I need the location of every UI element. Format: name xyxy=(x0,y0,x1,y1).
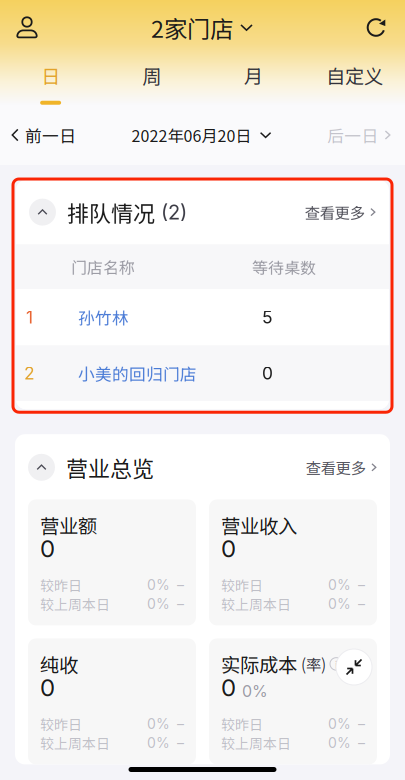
staticText: 5 xyxy=(262,307,273,328)
staticText: 实际成本 xyxy=(221,650,297,678)
button[interactable]: 自定义 xyxy=(304,50,405,110)
button[interactable]: 实际成本 xyxy=(209,638,377,764)
button[interactable]: 纯收 xyxy=(28,638,196,764)
staticText: 0% xyxy=(147,576,170,593)
staticText: 较昨日 xyxy=(40,714,82,734)
staticText: 较昨日 xyxy=(221,714,263,734)
staticText: 0% xyxy=(328,595,351,612)
button[interactable]: Refresh xyxy=(366,9,405,45)
staticText: 2 xyxy=(24,363,35,384)
staticText: 营业总览 xyxy=(66,451,154,483)
staticText: 小美的回归门店 xyxy=(78,361,197,385)
staticText: 营业收入 xyxy=(221,511,297,539)
staticText: 查看更多 xyxy=(305,201,365,223)
staticText: – xyxy=(177,715,184,732)
button[interactable]: 2 xyxy=(16,345,389,401)
button[interactable]: 营业额 xyxy=(28,499,196,625)
staticText: 2022年06月20日 xyxy=(132,123,252,147)
staticText: 0% xyxy=(147,595,170,612)
staticText: – xyxy=(177,734,184,751)
button[interactable]: 2022年06月20日 xyxy=(116,116,288,154)
staticText: 门店名称 xyxy=(71,255,135,278)
button[interactable]: Collapse section xyxy=(29,199,56,226)
staticText: 前一日 xyxy=(25,123,76,147)
staticText: 0 xyxy=(262,363,273,384)
button[interactable]: Collapse all xyxy=(336,649,372,685)
staticText: 月 xyxy=(244,61,263,89)
staticText: 较上周本日 xyxy=(221,594,291,614)
staticText: 0% xyxy=(242,682,268,701)
staticText: 0 xyxy=(221,673,236,702)
staticText: 2家门店 xyxy=(151,11,233,44)
staticText: – xyxy=(177,595,184,612)
staticText: – xyxy=(358,715,365,732)
staticText: 查看更多 xyxy=(306,456,366,478)
staticText: 0% xyxy=(147,715,170,732)
staticText: 较上周本日 xyxy=(221,733,291,753)
button[interactable]: 营业收入 xyxy=(209,499,377,625)
staticText: 0% xyxy=(147,734,170,751)
button[interactable]: 1 xyxy=(16,289,389,345)
staticText: 后一日 xyxy=(327,123,378,147)
staticText: 0% xyxy=(328,715,351,732)
staticText: 0 xyxy=(40,534,55,563)
staticText: 较上周本日 xyxy=(40,733,110,753)
staticText: 0 xyxy=(221,534,236,563)
staticText: 0 xyxy=(40,673,55,702)
staticText: 等待桌数 xyxy=(252,255,316,278)
button[interactable]: 周 xyxy=(101,50,202,110)
staticText: 日 xyxy=(41,61,60,89)
staticText: 自定义 xyxy=(326,61,383,89)
button[interactable]: 后一日 xyxy=(327,115,405,155)
button[interactable]: Profile xyxy=(0,8,38,47)
staticText: 较昨日 xyxy=(40,575,82,595)
staticText: 纯收 xyxy=(40,650,78,678)
button[interactable]: 月 xyxy=(202,50,304,110)
staticText: 排队情况 xyxy=(67,196,155,228)
staticText: 0% xyxy=(328,734,351,751)
staticText: – xyxy=(177,576,184,593)
button[interactable]: 查看更多 xyxy=(296,450,377,484)
staticText: 1 xyxy=(26,307,33,328)
staticText: (2) xyxy=(161,200,187,224)
button[interactable]: 查看更多 xyxy=(295,195,376,229)
staticText: (率) xyxy=(301,653,326,675)
staticText: – xyxy=(358,576,365,593)
button[interactable]: Collapse section xyxy=(28,454,55,481)
staticText: i xyxy=(335,656,338,672)
staticText: – xyxy=(358,595,365,612)
staticText: 较昨日 xyxy=(221,575,263,595)
staticText: 0% xyxy=(328,576,351,593)
staticText: – xyxy=(358,734,365,751)
staticText: 营业额 xyxy=(40,511,97,539)
button[interactable]: 前一日 xyxy=(0,115,76,155)
staticText: 周 xyxy=(142,61,161,89)
button[interactable]: 2家门店 xyxy=(151,3,253,52)
button[interactable]: 日 xyxy=(0,50,101,110)
staticText: 较上周本日 xyxy=(40,594,110,614)
staticText: 孙竹林 xyxy=(78,305,129,329)
